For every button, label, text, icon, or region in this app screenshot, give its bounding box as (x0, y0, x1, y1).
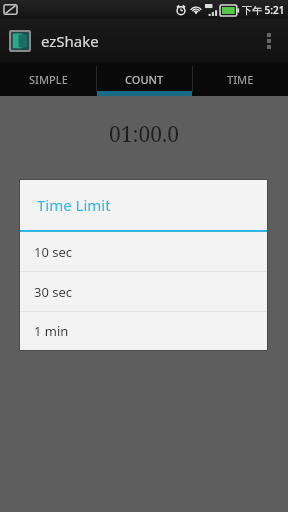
button[interactable]: More options (254, 19, 284, 62)
staticText: 1 min (34, 322, 69, 340)
button[interactable]: COUNT (97, 62, 192, 96)
staticText: 30 sec (34, 283, 73, 301)
button[interactable]: TIME (193, 62, 288, 96)
staticText: TIME (227, 72, 254, 87)
staticText: 01:00.0 (109, 120, 179, 149)
staticText: SIMPLE (29, 72, 68, 87)
staticText: COUNT (125, 72, 164, 87)
button[interactable]: 1 min (20, 312, 267, 350)
staticText: ezShake (41, 31, 99, 51)
button[interactable]: SIMPLE (0, 62, 96, 96)
button[interactable]: 30 sec (20, 272, 267, 311)
staticText: Time Limit (37, 195, 111, 215)
button[interactable]: 10 sec (20, 232, 267, 271)
staticText: 10 sec (34, 243, 73, 261)
staticText: 下午 5:21 (242, 3, 285, 17)
